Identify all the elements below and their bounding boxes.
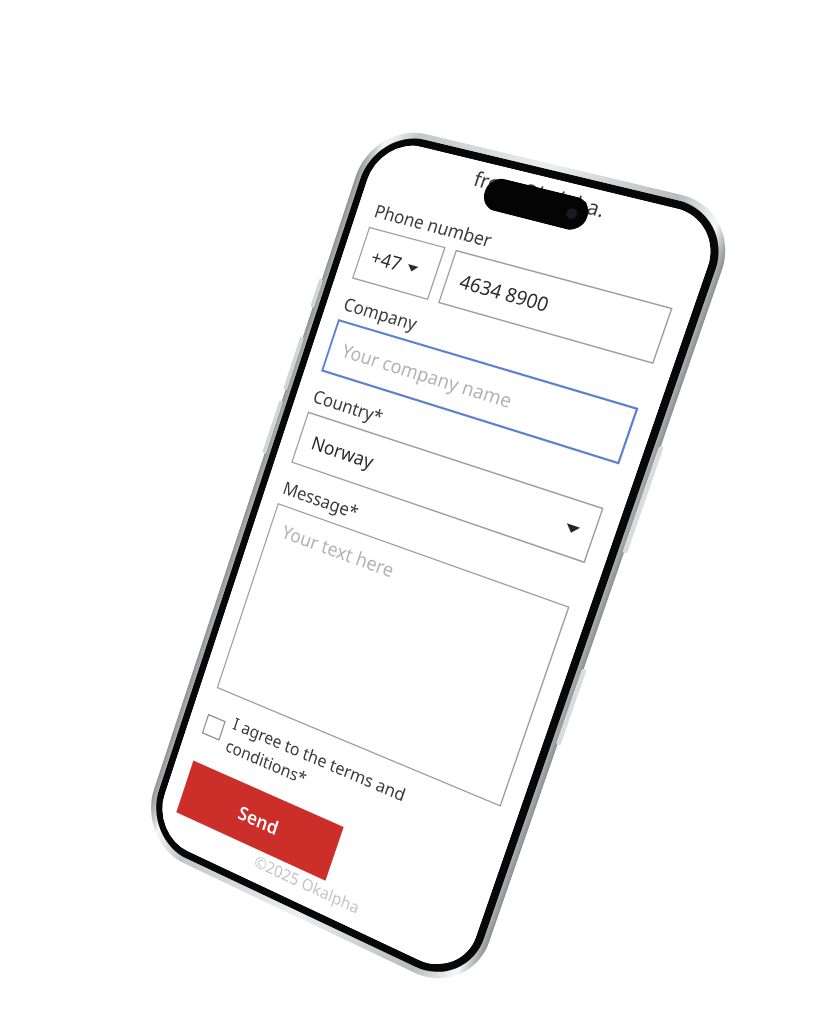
staticText: ©2025 Okalpha xyxy=(252,850,363,919)
staticText: Phone number xyxy=(371,198,496,253)
button[interactable]: Action button xyxy=(310,278,323,308)
button[interactable]: I agree to the terms and conditions* xyxy=(198,702,495,867)
button[interactable]: Your company name xyxy=(322,320,637,463)
staticText: Country* xyxy=(310,384,386,429)
staticText: Your company name xyxy=(339,337,516,414)
staticText: I agree to the terms and conditions* xyxy=(223,712,495,868)
staticText: 4634 8900 xyxy=(456,268,553,318)
staticText: Message* xyxy=(280,475,362,525)
button[interactable]: Volume down xyxy=(262,400,283,454)
button[interactable]: Norway xyxy=(292,412,603,562)
button[interactable]: Send xyxy=(176,760,344,881)
button[interactable]: Your text here xyxy=(217,504,569,806)
button[interactable]: Volume up xyxy=(283,336,304,391)
button[interactable]: Side button xyxy=(556,668,587,746)
staticText: Company xyxy=(341,291,421,336)
staticText: +47 xyxy=(368,244,406,277)
button[interactable]: +47 xyxy=(353,227,445,299)
staticText: Norway xyxy=(308,430,377,474)
button[interactable]: 4634 8900 xyxy=(439,251,672,363)
staticText: Send xyxy=(235,799,282,841)
button[interactable]: Power xyxy=(622,446,664,554)
staticText: Your text here xyxy=(279,519,398,583)
staticText: from Okalpha. xyxy=(470,165,610,224)
